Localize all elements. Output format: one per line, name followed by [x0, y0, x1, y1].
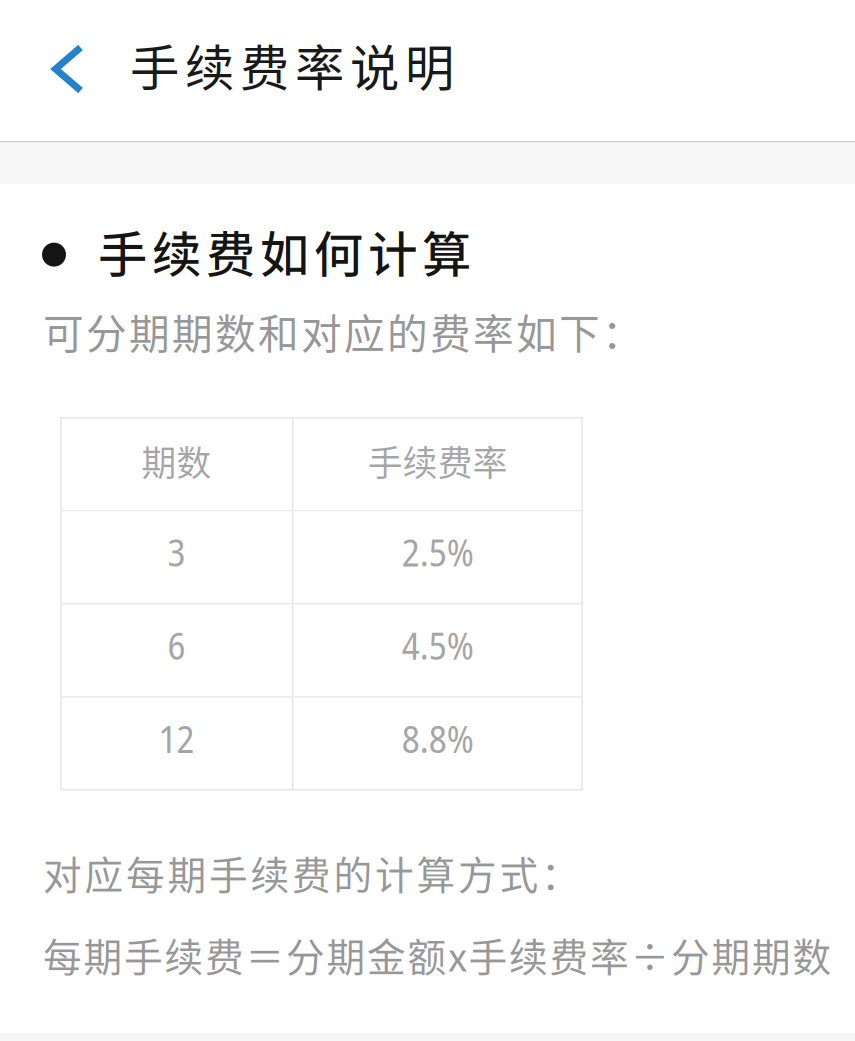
staticText: 对应每期手续费的计算方式： [43, 845, 580, 901]
staticText: 3 [167, 527, 185, 577]
staticText: 可分期期数和对应的费率如下： [43, 302, 643, 361]
staticText: 4.5% [402, 620, 474, 671]
button[interactable]: Back [0, 0, 116, 141]
staticText: 期数 [141, 436, 211, 486]
staticText: 每期手续费＝分期金额x手续费率÷分期期数 [43, 927, 831, 983]
staticText: 8.8% [402, 713, 474, 764]
staticText: 6 [167, 620, 185, 671]
staticText: 手续费率 [368, 436, 508, 486]
staticText: 12 [158, 713, 194, 764]
staticText: 手续费率说明 [130, 29, 454, 100]
staticText: 2.5% [402, 527, 474, 577]
staticText: 手续费如何计算 [98, 215, 471, 287]
